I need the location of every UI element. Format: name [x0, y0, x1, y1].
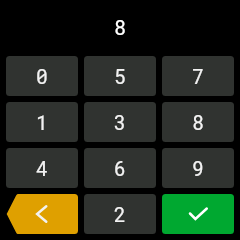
staticText: 4 [36, 155, 48, 181]
staticText: 8 [192, 109, 204, 135]
button[interactable]: 5 [84, 56, 156, 96]
staticText: 3 [114, 109, 126, 135]
button[interactable]: 1 [6, 102, 78, 142]
button[interactable]: 7 [162, 56, 234, 96]
staticText: 1 [36, 109, 48, 135]
staticText: 7 [192, 63, 204, 89]
button[interactable]: 4 [6, 148, 78, 188]
staticText: 0 [36, 63, 48, 89]
button[interactable]: Backspace [6, 194, 78, 234]
staticText: 5 [114, 63, 126, 89]
staticText: 9 [192, 155, 204, 181]
button[interactable]: 0 [6, 56, 78, 96]
staticText: 6 [114, 155, 126, 181]
staticText: 2 [114, 201, 126, 227]
button[interactable]: 6 [84, 148, 156, 188]
button[interactable]: 9 [162, 148, 234, 188]
button[interactable]: 3 [84, 102, 156, 142]
button[interactable]: 2 [84, 194, 156, 234]
button[interactable]: 8 [162, 102, 234, 142]
button[interactable]: Confirm [162, 194, 234, 234]
staticText: 8 [114, 16, 126, 39]
